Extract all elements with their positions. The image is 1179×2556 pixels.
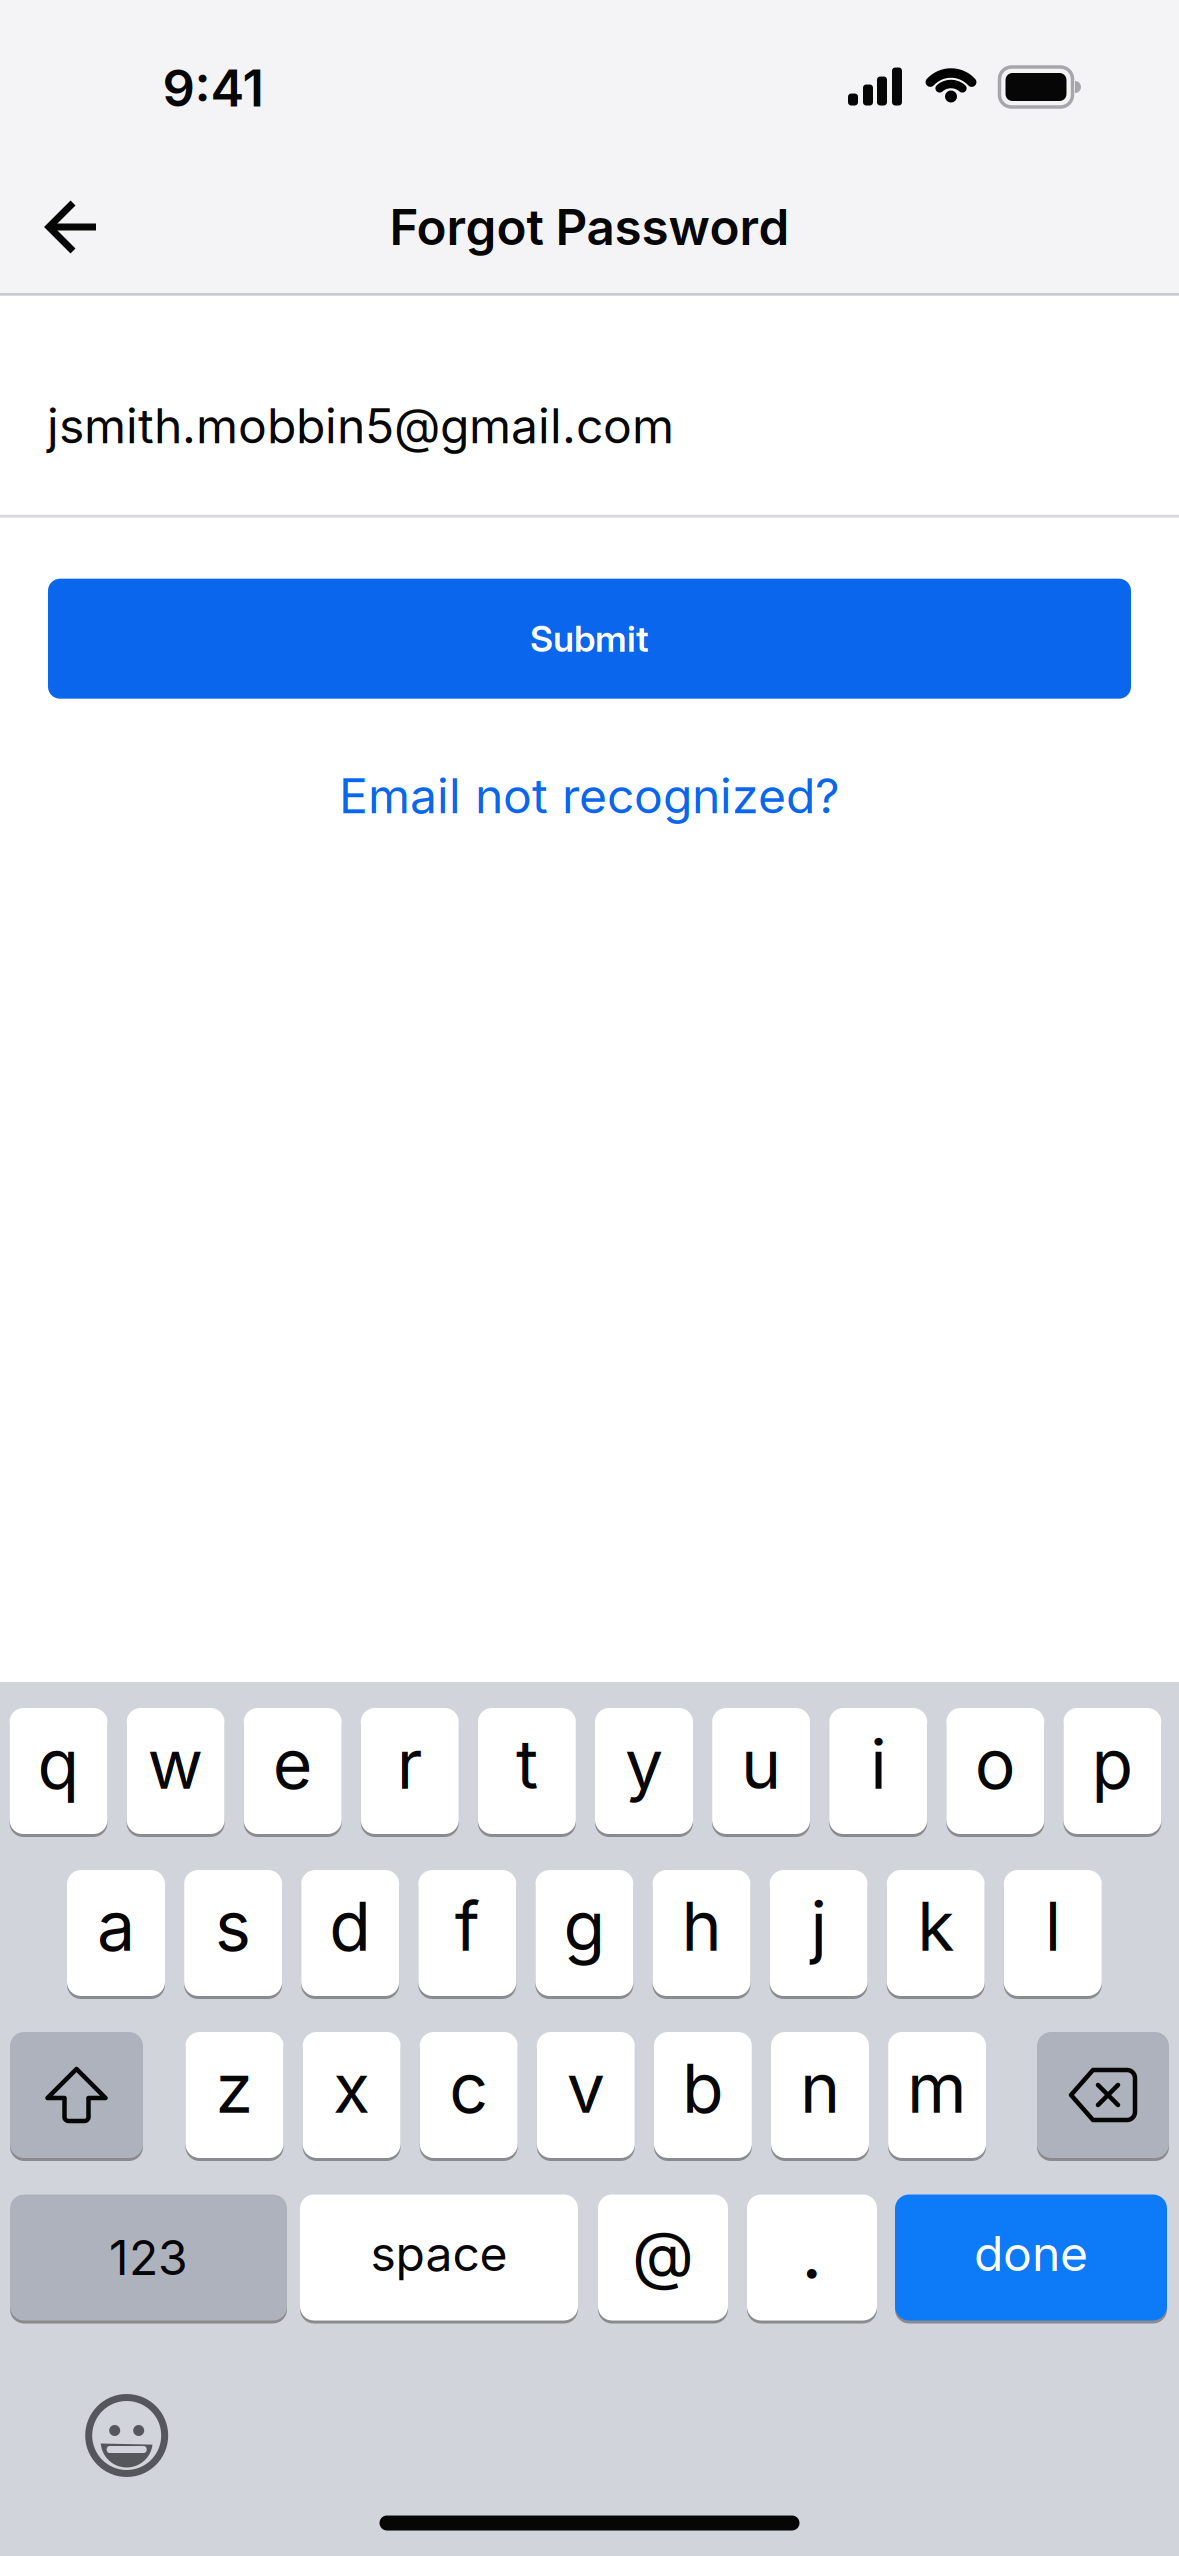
button[interactable]: j [770,1870,868,1996]
button[interactable]: e [244,1708,342,1834]
staticText: q [37,1724,79,1804]
staticText: d [329,1886,371,1966]
staticText: u [741,1724,781,1804]
staticText: w [148,1724,204,1804]
button[interactable]: m [888,2032,986,2158]
button[interactable]: a [67,1870,165,1996]
button[interactable]: 123 [10,2194,287,2320]
button[interactable]: f [418,1870,516,1996]
staticText: Forgot Password [389,198,789,256]
staticText: f [455,1886,480,1966]
staticText: a [97,1886,135,1966]
button[interactable]: v [537,2032,635,2158]
staticText: s [215,1886,251,1966]
staticText: . [801,2207,823,2296]
button[interactable]: w [127,1708,225,1834]
staticText: i [870,1724,886,1804]
staticText: @ [632,2217,694,2292]
button[interactable]: t [478,1708,576,1834]
staticText: l [1045,1886,1061,1966]
button[interactable]: n [771,2032,869,2158]
staticText: v [567,2048,605,2128]
staticText: g [563,1886,605,1966]
button[interactable]: done [895,2194,1167,2320]
staticText: x [333,2048,370,2128]
button[interactable]: Emoji [85,2393,169,2477]
button[interactable]: c [420,2032,518,2158]
button[interactable]: b [654,2032,752,2158]
staticText: Email not recognized? [339,767,840,824]
button[interactable]: h [652,1870,750,1996]
button[interactable]: d [301,1870,399,1996]
button[interactable]: o [946,1708,1044,1834]
button[interactable]: Back [24,179,120,275]
button[interactable]: space [300,2194,578,2320]
staticText: e [273,1724,313,1804]
button[interactable]: x [303,2032,401,2158]
button[interactable]: g [535,1870,633,1996]
staticText: jsmith.mobbin5@gmail.com [47,397,674,454]
staticText: space [370,2225,507,2282]
button[interactable]: z [185,2032,283,2158]
button[interactable]: Delete [1037,2032,1169,2158]
staticText: c [449,2048,488,2128]
staticText: y [625,1724,663,1804]
button[interactable]: l [1004,1870,1102,1996]
staticText: k [917,1886,954,1966]
staticText: r [397,1724,423,1804]
staticText: p [1091,1724,1133,1804]
staticText: 123 [109,2229,188,2286]
staticText: h [681,1886,721,1966]
staticText: t [516,1724,538,1804]
staticText: j [811,1886,827,1966]
button[interactable]: q [9,1708,107,1834]
staticText: Submit [530,617,649,660]
button[interactable]: p [1063,1708,1161,1834]
button[interactable]: y [595,1708,693,1834]
button[interactable]: Submit [48,579,1131,699]
staticText: n [800,2048,840,2128]
staticText: b [682,2048,724,2128]
staticText: o [975,1724,1016,1804]
button[interactable]: k [887,1870,985,1996]
button[interactable]: @ [598,2194,728,2320]
staticText: 9:41 [162,58,263,118]
button[interactable]: . [747,2194,877,2320]
button[interactable]: r [361,1708,459,1834]
staticText: m [907,2048,967,2128]
staticText: done [974,2225,1088,2282]
button[interactable]: Email not recognized? [339,765,840,827]
button[interactable]: Shift [10,2032,143,2158]
button[interactable]: u [712,1708,810,1834]
button[interactable]: s [184,1870,282,1996]
button[interactable]: i [829,1708,927,1834]
staticText: z [215,2048,253,2128]
